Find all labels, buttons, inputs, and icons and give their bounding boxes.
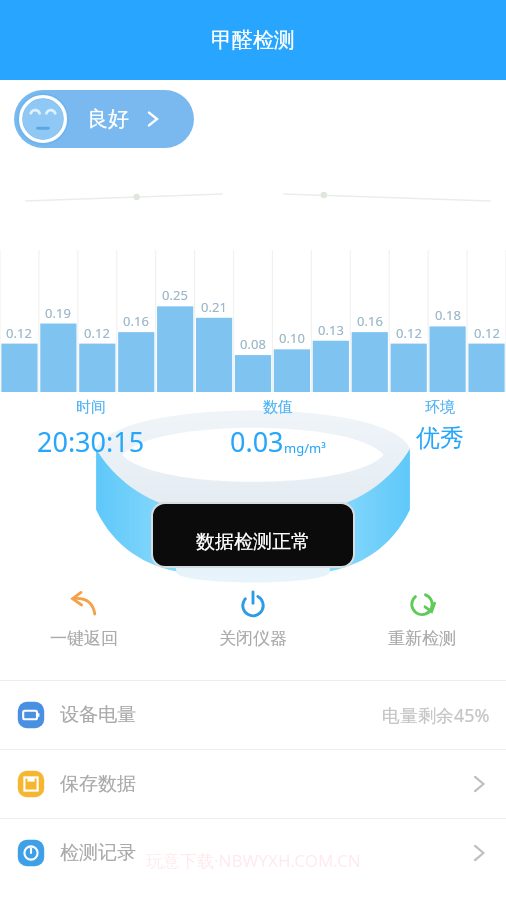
staticText: 玩意下载·NBWYXH.COM.CN [146, 849, 361, 872]
staticText: 0.08 [240, 335, 266, 353]
staticText: 0.25 [162, 286, 188, 304]
staticText: 20:30:15 [37, 423, 145, 460]
staticText: 0.13 [318, 321, 344, 339]
staticText: 保存数据 [60, 772, 136, 796]
other: 打开 保存数据 [468, 773, 490, 795]
staticText: 时间 [76, 398, 106, 417]
staticText: 0.16 [123, 312, 149, 330]
button[interactable]: 检测记录 [0, 819, 506, 887]
button[interactable]: 良好 [14, 90, 194, 148]
other: 关闭仪器 [238, 590, 268, 620]
staticText: 0.10 [279, 329, 305, 347]
other: 重新检测 [407, 590, 437, 620]
staticText: 0.12 [6, 324, 32, 342]
button[interactable]: 重新检测 [337, 582, 506, 662]
staticText: 关闭仪器 [219, 628, 287, 649]
button[interactable]: 一键返回 [0, 582, 168, 662]
staticText: 设备电量 [60, 703, 136, 727]
staticText: 数值 [263, 398, 293, 417]
other: 一键返回 [69, 590, 99, 620]
staticText: 甲醛检测 [211, 27, 295, 53]
staticText: 优秀 [416, 423, 464, 453]
staticText: 重新检测 [388, 628, 456, 649]
staticText: 环境 [425, 398, 455, 417]
staticText: 0.12 [396, 324, 422, 342]
staticText: 数据检测正常 [196, 530, 310, 554]
staticText: 0.03 [230, 423, 284, 460]
staticText: 0.16 [357, 312, 383, 330]
staticText: 0.21 [201, 298, 227, 316]
other: 打开 检测记录 [468, 842, 490, 864]
button[interactable]: 设备电量 [0, 681, 506, 749]
staticText: mg/m³ [284, 439, 326, 457]
staticText: 检测记录 [60, 841, 136, 865]
staticText: 一键返回 [50, 628, 118, 649]
staticText: 电量剩余45% [382, 703, 490, 728]
staticText: 0.12 [84, 324, 110, 342]
button[interactable]: 关闭仪器 [168, 582, 337, 662]
staticText: 0.18 [435, 306, 461, 324]
staticText: 0.12 [474, 324, 500, 342]
button[interactable]: 保存数据 [0, 750, 506, 818]
staticText: 0.19 [45, 304, 71, 322]
staticText: 良好 [87, 106, 129, 132]
